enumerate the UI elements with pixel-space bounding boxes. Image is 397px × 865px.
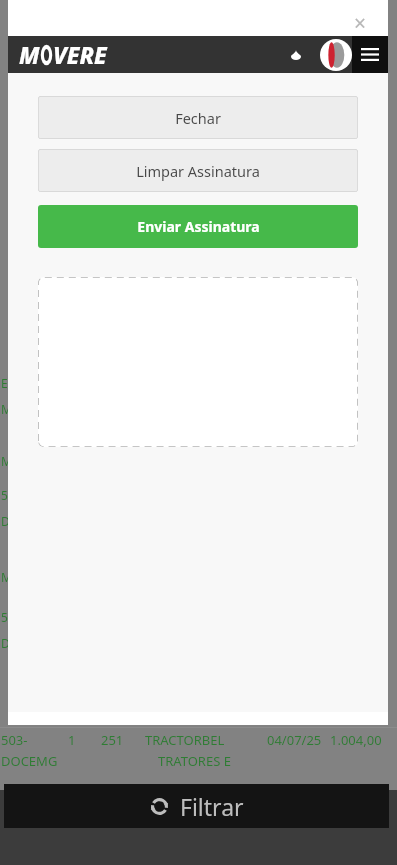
button[interactable]: Combustível xyxy=(283,42,309,68)
staticText: Fechar xyxy=(175,108,221,128)
button[interactable]: Área de assinatura xyxy=(38,277,358,447)
staticText: 1.004,00 xyxy=(330,731,382,749)
staticText: Enviar Assinatura xyxy=(137,217,260,236)
staticText: 5 xyxy=(1,609,8,625)
staticText: D xyxy=(1,513,10,529)
staticText: 5 xyxy=(1,487,8,503)
button[interactable]: Fechar xyxy=(348,9,372,33)
button[interactable]: Menu xyxy=(352,36,388,73)
button[interactable]: Fechar xyxy=(38,96,358,139)
staticText: × xyxy=(354,9,367,33)
button[interactable]: Filtrar xyxy=(4,784,389,828)
button[interactable]: M xyxy=(19,39,107,70)
staticText: M xyxy=(19,39,40,70)
staticText: VERE xyxy=(53,39,107,70)
staticText: 251 xyxy=(101,731,124,749)
staticText: M xyxy=(1,569,12,585)
staticText: Limpar Assinatura xyxy=(136,161,260,181)
staticText: M xyxy=(1,401,12,417)
staticText: 503- xyxy=(1,731,28,749)
staticText: Filtrar xyxy=(180,791,244,822)
staticText: COMERCIAL LTDA xyxy=(150,708,258,726)
staticText: E xyxy=(1,375,8,391)
staticText: TRATORES E xyxy=(158,752,231,770)
button[interactable]: Limpar Assinatura xyxy=(38,149,358,192)
staticText: 04/07/25 xyxy=(267,731,322,749)
staticText: DOCEMG xyxy=(1,752,58,770)
staticText: D xyxy=(1,635,10,651)
staticText: 1 xyxy=(68,731,76,749)
staticText: M xyxy=(1,453,12,469)
button[interactable]: Perfil xyxy=(319,38,352,71)
staticText: TRACTORBEL xyxy=(145,731,225,749)
button[interactable]: Enviar Assinatura xyxy=(38,205,358,248)
